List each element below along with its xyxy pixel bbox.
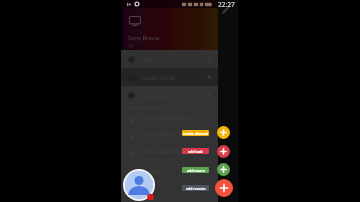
button[interactable]: create channel: [217, 126, 230, 139]
button[interactable]: add task: [182, 148, 209, 154]
button[interactable]: create channel: [182, 130, 209, 136]
button[interactable]: add remote: [215, 179, 233, 197]
staticText: Settings: [142, 168, 163, 175]
staticText: show NICKTOONS: [142, 148, 189, 155]
button[interactable]: add task: [217, 145, 230, 158]
button[interactable]: vol DOWN on sky: [121, 129, 218, 146]
button[interactable]: add remote: [182, 185, 209, 191]
button[interactable]: add macro: [217, 163, 230, 176]
staticText: TV: [128, 43, 134, 49]
staticText: SCHEDULED TASKS: [128, 106, 162, 111]
button[interactable]: Edit: [218, 1, 234, 17]
staticText: add remote: [186, 186, 206, 191]
staticText: Sony Bravia: [128, 34, 160, 42]
button[interactable]: add macro: [182, 167, 209, 173]
staticText: 22:27: [218, 0, 235, 8]
button[interactable]: Settings: [121, 163, 218, 180]
button[interactable]: show NICKTOONS: [121, 146, 218, 163]
staticText: create channel: [183, 131, 209, 136]
staticText: add task: [188, 149, 203, 154]
staticText: nvidia shield: [142, 74, 175, 81]
staticText: add macro: [187, 168, 205, 173]
staticText: vol DOWN on sky: [142, 131, 187, 138]
